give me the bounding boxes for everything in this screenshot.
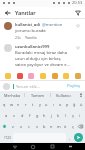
- button[interactable]: m: [55, 121, 62, 132]
- staticText: Yanıtlar: [15, 9, 36, 16]
- staticText: g: [36, 113, 39, 118]
- button[interactable]: Like: [74, 44, 81, 51]
- staticText: 20:53: [72, 0, 83, 5]
- staticText: w: [10, 102, 14, 107]
- button[interactable]: Emoji: [51, 72, 58, 79]
- button[interactable]: Voice input: [76, 91, 85, 99]
- button[interactable]: ö: [62, 121, 69, 132]
- button[interactable]: uzunkullanici999: [0, 43, 85, 69]
- button[interactable]: Back: [3, 8, 12, 17]
- button[interactable]: z: [9, 121, 17, 132]
- button[interactable]: x: [17, 121, 25, 132]
- staticText: y: [39, 102, 41, 107]
- staticText: .: [69, 135, 71, 141]
- button[interactable]: a: [2, 110, 10, 121]
- staticText: t: [32, 102, 34, 107]
- staticText: ?123: [4, 136, 11, 140]
- staticText: ö: [64, 124, 67, 129]
- button[interactable]: p: [64, 99, 71, 110]
- button[interactable]: ı: [50, 99, 57, 110]
- staticText: h: [43, 113, 46, 118]
- staticText: ç: [72, 124, 74, 129]
- staticText: u: [45, 102, 48, 107]
- staticText: ğ: [73, 102, 76, 107]
- button[interactable]: kullanici_adi: [0, 21, 85, 41]
- button[interactable]: Home: [29, 143, 37, 150]
- staticText: o: [59, 102, 62, 107]
- button[interactable]: ğ: [71, 99, 78, 110]
- staticText: 23s: [15, 35, 21, 40]
- staticText: m: [57, 124, 61, 129]
- staticText: i: [79, 113, 81, 118]
- button[interactable]: Keyboard: [66, 143, 74, 150]
- button[interactable]: e: [15, 99, 22, 110]
- staticText: @mention: [41, 22, 63, 28]
- button[interactable]: ü: [78, 99, 85, 110]
- button[interactable]: r: [22, 99, 29, 110]
- button[interactable]: Send: [74, 133, 83, 142]
- button[interactable]: Like: [74, 22, 81, 29]
- button[interactable]: v: [33, 121, 41, 132]
- staticText: c: [28, 124, 30, 129]
- button[interactable]: h: [41, 110, 48, 121]
- button[interactable]: ş: [69, 110, 76, 121]
- button[interactable]: Emoji: [39, 72, 46, 79]
- button[interactable]: Filter: [73, 8, 82, 17]
- button[interactable]: o: [57, 99, 64, 110]
- button[interactable]: q: [0, 99, 8, 110]
- button[interactable]: t: [29, 99, 36, 110]
- staticText: l: [65, 113, 67, 118]
- button[interactable]: Merhaba: [0, 91, 24, 99]
- button[interactable]: l: [62, 110, 69, 121]
- button[interactable]: b: [41, 121, 48, 132]
- button[interactable]: ç: [69, 121, 76, 132]
- staticText: b: [43, 124, 46, 129]
- button[interactable]: u: [43, 99, 50, 110]
- staticText: yorumu burada: [15, 28, 46, 34]
- staticText: kullanici_adi: [15, 22, 41, 28]
- button[interactable]: Emoji: [74, 72, 81, 79]
- staticText: ş: [72, 113, 74, 118]
- button[interactable]: y: [36, 99, 43, 110]
- button[interactable]: Period: [67, 133, 73, 142]
- staticText: n: [50, 124, 53, 129]
- button[interactable]: d: [18, 110, 26, 121]
- button[interactable]: j: [48, 110, 55, 121]
- button[interactable]: Emoji: [16, 72, 23, 79]
- staticText: k: [57, 113, 60, 118]
- staticText: d: [21, 113, 24, 118]
- button[interactable]: Paylaş: [66, 83, 82, 89]
- button[interactable]: Backspace: [76, 121, 85, 132]
- staticText: p: [66, 102, 69, 107]
- button[interactable]: Shift: [0, 121, 9, 132]
- staticText: s: [13, 113, 15, 118]
- staticText: ü: [80, 102, 83, 107]
- button[interactable]: Back: [11, 143, 19, 150]
- button[interactable]: n: [48, 121, 55, 132]
- staticText: x: [20, 124, 23, 129]
- button[interactable]: s: [10, 110, 18, 121]
- staticText: j: [51, 113, 53, 118]
- button[interactable]: Recents: [48, 143, 56, 150]
- button[interactable]: w: [8, 99, 15, 110]
- button[interactable]: k: [55, 110, 62, 121]
- staticText: Kullanıcı: [56, 93, 71, 98]
- button[interactable]: Tamam: [25, 91, 50, 99]
- button[interactable]: Kullanıcı: [51, 91, 76, 99]
- button[interactable]: Emoji: [27, 72, 34, 79]
- button[interactable]: Yanıtla: [25, 35, 37, 40]
- staticText: Buradaki mesaj biraz daha uzun olduğu iç…: [15, 50, 72, 68]
- button[interactable]: i: [76, 110, 83, 121]
- button[interactable]: Emoji: [62, 72, 69, 79]
- button[interactable]: c: [25, 121, 33, 132]
- staticText: z: [12, 124, 14, 129]
- staticText: v: [36, 124, 38, 129]
- button[interactable]: f: [26, 110, 34, 121]
- button[interactable]: Symbols: [2, 133, 12, 142]
- button[interactable]: g: [34, 110, 41, 121]
- staticText: a: [5, 113, 8, 118]
- staticText: Tamam: [31, 93, 45, 98]
- button[interactable]: Emoji: [4, 72, 11, 79]
- staticText: ı: [53, 102, 55, 107]
